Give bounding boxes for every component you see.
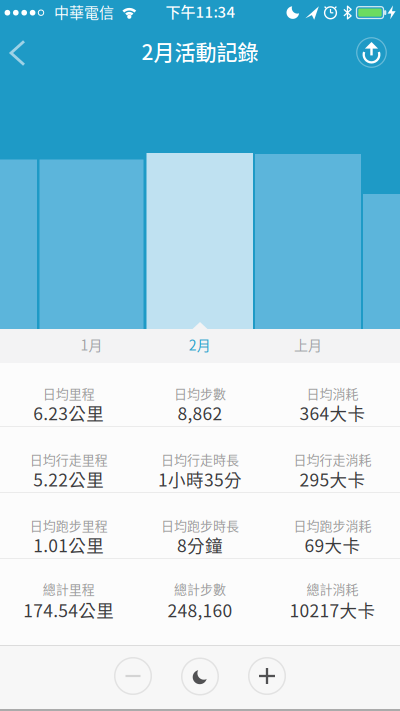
staticText: 1.01公里 (33, 532, 104, 557)
staticText: 364大卡 (299, 400, 365, 425)
staticText: 69大卡 (304, 532, 360, 557)
staticText: 248,160 (167, 597, 232, 622)
staticText: 日均行走里程 (30, 450, 108, 468)
staticText: 2月 (189, 334, 211, 355)
staticText: 日均步數 (174, 384, 226, 402)
staticText: 日均跑步消耗 (293, 516, 371, 534)
staticText: 總計里程 (43, 579, 95, 598)
button[interactable]: Decrease (111, 654, 155, 698)
staticText: 1小時35分 (158, 466, 242, 491)
staticText: 10217大卡 (289, 597, 375, 622)
button[interactable]: 上月 (255, 327, 361, 362)
staticText: 日均跑步時長 (161, 516, 239, 534)
staticText: 總計消耗 (306, 579, 358, 598)
button[interactable]: 2月 (147, 327, 253, 362)
staticText: 6.23公里 (33, 400, 104, 425)
staticText: 中華電信 (54, 1, 114, 22)
button[interactable]: Share (349, 25, 393, 80)
button[interactable]: Increase (245, 654, 289, 698)
staticText: 日均消耗 (306, 384, 358, 402)
staticText: 8分鐘 (177, 532, 223, 557)
button[interactable]: Night mode (178, 654, 222, 698)
button[interactable]: Back (0, 25, 44, 80)
staticText: 下午11:34 (165, 0, 235, 22)
staticText: 295大卡 (299, 466, 365, 491)
staticText: 日均里程 (43, 384, 95, 402)
staticText: 5.22公里 (33, 466, 104, 491)
staticText: 8,862 (177, 400, 222, 425)
staticText: 日均行走消耗 (293, 450, 371, 468)
button[interactable]: 1月 (39, 327, 143, 362)
staticText: 總計步數 (174, 579, 226, 598)
staticText: 174.54公里 (23, 597, 114, 622)
staticText: 2月活動記錄 (141, 36, 258, 66)
staticText: 日均行走時長 (161, 450, 239, 468)
staticText: 日均跑步里程 (30, 516, 108, 534)
staticText: 上月 (294, 334, 322, 355)
staticText: 1月 (80, 334, 102, 355)
